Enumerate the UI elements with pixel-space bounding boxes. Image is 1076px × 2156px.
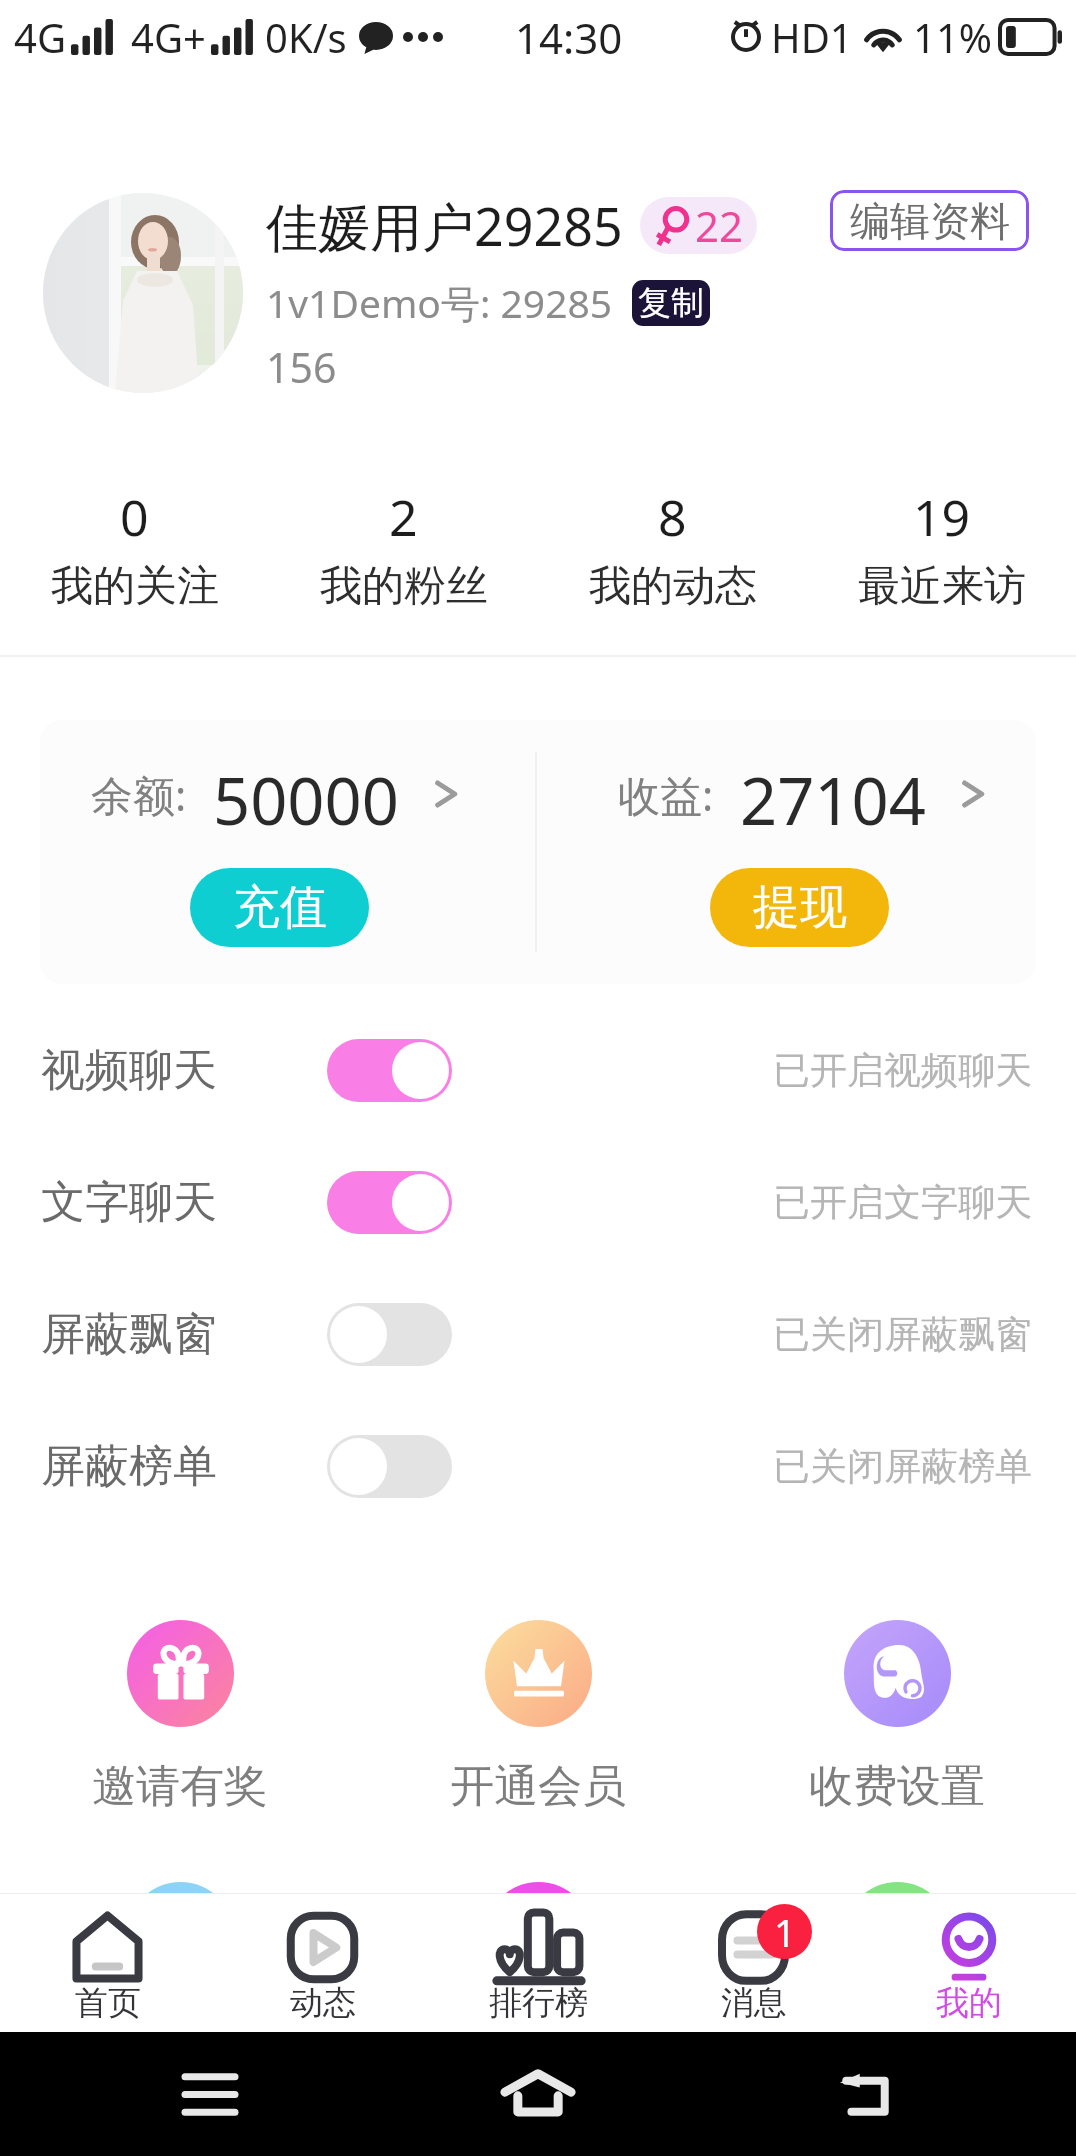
- staticText: 1v1Demo号: 29285: [266, 276, 613, 329]
- button[interactable]: 编辑资料: [830, 190, 1029, 251]
- staticText: 已关闭屏蔽飘窗: [773, 1311, 1032, 1358]
- staticText: 消息: [721, 1982, 787, 2020]
- button[interactable]: [327, 1039, 452, 1102]
- button[interactable]: 首页: [0, 1894, 215, 2032]
- button[interactable]: 1: [646, 1894, 861, 2032]
- staticText: HD1: [771, 10, 853, 64]
- button[interactable]: 文字聊天: [0, 1136, 1076, 1268]
- staticText: 排行榜: [489, 1982, 588, 2020]
- staticText: 我的粉丝: [320, 560, 488, 613]
- button[interactable]: 收费设置: [718, 1620, 1076, 1814]
- button[interactable]: 0: [0, 430, 269, 613]
- staticText: 佳媛用户29285: [266, 190, 623, 261]
- staticText: 屏蔽榜单: [41, 1439, 217, 1494]
- button[interactable]: Recents: [160, 2054, 260, 2134]
- staticText: 0K/s: [265, 10, 347, 64]
- button[interactable]: 22: [640, 197, 757, 254]
- staticText: 已关闭屏蔽榜单: [773, 1443, 1032, 1490]
- staticText: 我的动态: [589, 560, 757, 613]
- staticText: 我的: [936, 1982, 1002, 2020]
- button[interactable]: 余额:: [91, 756, 457, 832]
- button[interactable]: 我的: [861, 1894, 1076, 2032]
- staticText: 收费设置: [809, 1759, 985, 1814]
- staticText: 19: [913, 483, 971, 551]
- staticText: 最近来访: [858, 560, 1026, 613]
- staticText: 屏蔽飘窗: [41, 1307, 217, 1362]
- button[interactable]: 提现: [710, 868, 889, 947]
- staticText: 开通会员: [450, 1759, 626, 1814]
- staticText: 余额:: [91, 766, 187, 823]
- button[interactable]: [327, 1435, 452, 1498]
- staticText: 文字聊天: [41, 1175, 217, 1230]
- staticText: 2: [389, 483, 418, 551]
- staticText: 动态: [290, 1982, 356, 2020]
- staticText: 156: [266, 339, 337, 395]
- button[interactable]: 动态: [215, 1894, 430, 2032]
- staticText: 我的关注: [51, 560, 219, 613]
- button[interactable]: 屏蔽榜单: [0, 1400, 1076, 1532]
- staticText: 50000: [213, 756, 399, 832]
- staticText: 首页: [75, 1982, 141, 2020]
- button[interactable]: [327, 1171, 452, 1234]
- staticText: 1: [774, 1906, 796, 1958]
- button[interactable]: 2: [269, 430, 538, 613]
- staticText: 邀请有奖: [92, 1759, 268, 1814]
- staticText: 已开启文字聊天: [773, 1179, 1032, 1226]
- button[interactable]: [327, 1303, 452, 1366]
- staticText: 编辑资料: [850, 196, 1010, 246]
- button[interactable]: 复制: [632, 280, 710, 326]
- button[interactable]: 充值: [190, 868, 369, 947]
- button[interactable]: Home: [488, 2054, 588, 2134]
- staticText: 11%: [913, 10, 992, 64]
- staticText: 8: [658, 483, 687, 551]
- button[interactable]: 开通会员: [359, 1620, 717, 1814]
- staticText: 27104: [740, 756, 926, 832]
- button[interactable]: 屏蔽飘窗: [0, 1268, 1076, 1400]
- button[interactable]: 排行榜: [431, 1894, 646, 2032]
- button[interactable]: 8: [538, 430, 807, 613]
- staticText: 14:30: [515, 9, 623, 66]
- button[interactable]: 邀请有奖: [1, 1620, 359, 1814]
- staticText: 4G+: [131, 10, 206, 64]
- staticText: 已开启视频聊天: [773, 1047, 1032, 1094]
- staticText: 视频聊天: [41, 1043, 217, 1098]
- staticText: 收益:: [618, 766, 714, 823]
- staticText: 4G: [14, 10, 66, 64]
- staticText: 复制: [638, 282, 704, 324]
- button[interactable]: 视频聊天: [0, 1004, 1076, 1136]
- staticText: 22: [695, 197, 744, 254]
- button[interactable]: Avatar: [43, 193, 243, 393]
- button[interactable]: Back: [816, 2054, 916, 2134]
- staticText: 0: [120, 483, 149, 551]
- button[interactable]: 收益:: [618, 756, 984, 832]
- button[interactable]: 19: [807, 430, 1076, 613]
- staticText: 提现: [753, 878, 847, 937]
- staticText: 充值: [233, 878, 327, 937]
